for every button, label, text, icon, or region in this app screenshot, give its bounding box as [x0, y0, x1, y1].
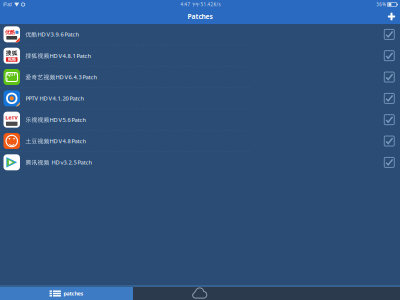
staticText: 36% — [376, 1, 386, 7]
button[interactable]: patches — [0, 287, 133, 300]
staticText: LeTV — [5, 113, 18, 121]
staticText: patches — [63, 290, 83, 297]
staticText: 腾讯视频 HD v3.2.5 Patch — [25, 158, 92, 166]
staticText: 优酷 — [5, 29, 15, 35]
button[interactable]: Cloud storage — [133, 287, 266, 300]
staticText: 视频 — [8, 57, 16, 62]
button[interactable]: 优酷 — [0, 24, 400, 45]
staticText: 乐视视频HD V5.6 Patch — [25, 116, 86, 124]
button[interactable]: Add patch — [387, 12, 400, 21]
button[interactable]: LeTV — [0, 109, 400, 130]
staticText: 4:47 下午 51.42K/s — [181, 1, 221, 7]
staticText: 搜狐 — [6, 50, 18, 57]
button[interactable]: 土豆视频HD V4.8 Patch — [0, 131, 400, 151]
staticText: 搜狐视频HD V4.8.1 Patch — [25, 52, 91, 60]
staticText: iQIYI — [6, 71, 17, 83]
button[interactable]: PPTV HD V4.1.20 Patch — [0, 88, 400, 109]
button[interactable]: 腾讯视频 HD v3.2.5 Patch — [0, 152, 400, 173]
staticText: 优酷HD V3.9.6 Patch — [25, 30, 79, 38]
staticText: 土豆视频HD V4.8 Patch — [25, 137, 86, 145]
staticText: PPTV HD V4.1.20 Patch — [25, 94, 84, 102]
button[interactable]: iQIYI — [0, 67, 400, 87]
staticText: Patches — [187, 12, 212, 21]
button[interactable]: 搜狐 — [0, 45, 400, 66]
staticText: 爱奇艺视频HD V6.4.3 Patch — [25, 73, 97, 81]
staticText: iPad — [3, 1, 12, 7]
